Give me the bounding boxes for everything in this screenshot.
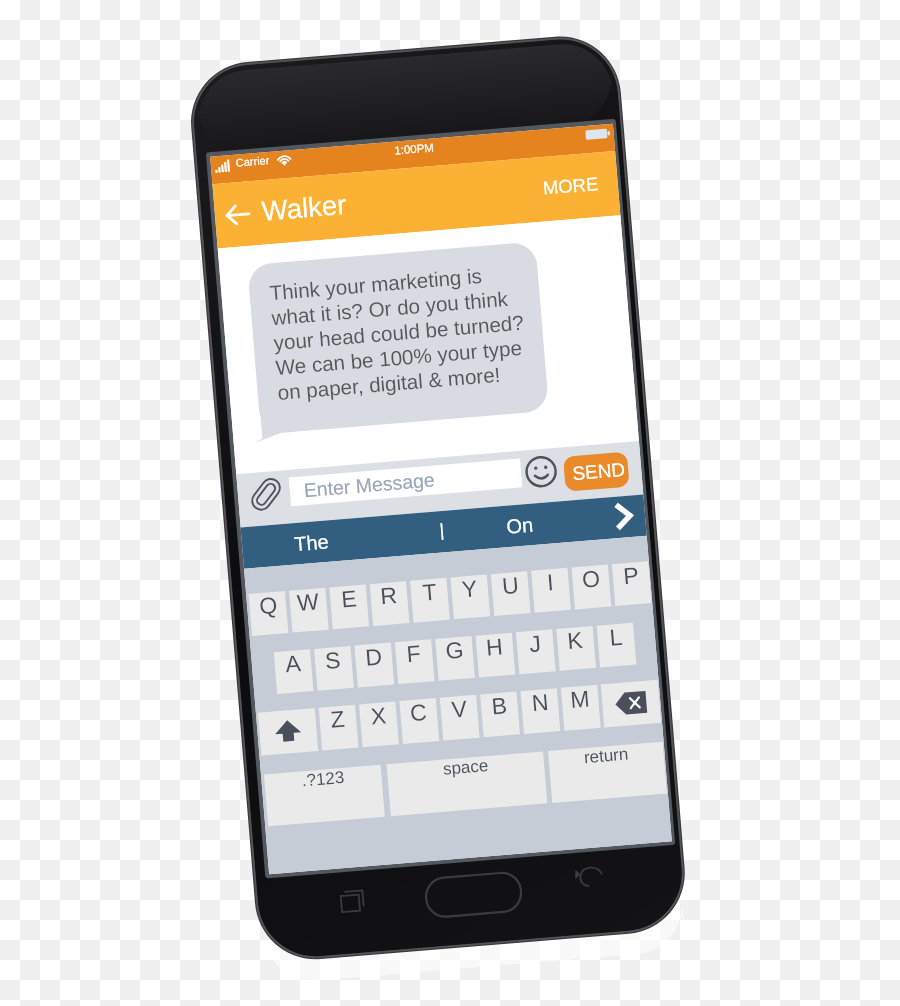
button[interactable]: Z bbox=[319, 705, 358, 751]
staticText: M bbox=[561, 685, 600, 731]
button[interactable]: R bbox=[370, 581, 409, 626]
button[interactable]: C bbox=[399, 698, 439, 744]
staticText: O bbox=[572, 564, 611, 609]
button[interactable]: K bbox=[556, 626, 595, 671]
staticText: R bbox=[370, 581, 409, 626]
staticText: J bbox=[516, 629, 555, 674]
button[interactable]: O bbox=[572, 564, 611, 609]
staticText: U bbox=[491, 571, 531, 616]
staticText: W bbox=[289, 588, 328, 633]
staticText: X bbox=[360, 701, 399, 747]
button[interactable]: L bbox=[597, 623, 636, 667]
staticText: T bbox=[411, 578, 450, 623]
button[interactable]: S bbox=[314, 646, 353, 691]
staticText: F bbox=[395, 639, 434, 684]
button[interactable]: space bbox=[387, 751, 547, 816]
staticText: Z bbox=[319, 705, 358, 751]
staticText: C bbox=[399, 698, 439, 744]
button[interactable]: F bbox=[395, 639, 434, 684]
staticText: H bbox=[475, 633, 515, 677]
button[interactable]: Enter Message bbox=[289, 458, 522, 506]
staticText: .?123 bbox=[264, 765, 385, 826]
button[interactable]: V bbox=[440, 695, 480, 741]
button[interactable]: A bbox=[274, 649, 313, 694]
staticText: N bbox=[521, 688, 560, 734]
button[interactable]: U bbox=[491, 571, 531, 616]
staticText: D bbox=[355, 643, 394, 687]
button[interactable]: I bbox=[531, 568, 570, 613]
button[interactable]: W bbox=[289, 588, 328, 633]
button[interactable]: SEND bbox=[563, 452, 630, 492]
staticText: Walker bbox=[260, 189, 348, 227]
button[interactable]: .?123 bbox=[264, 765, 385, 826]
staticText: I bbox=[531, 568, 570, 613]
button[interactable]: On bbox=[475, 501, 568, 549]
button[interactable]: P bbox=[612, 561, 651, 606]
button[interactable]: N bbox=[521, 688, 560, 734]
staticText: Y bbox=[450, 574, 490, 619]
button[interactable]: J bbox=[516, 629, 555, 674]
staticText: B bbox=[480, 691, 519, 737]
staticText: G bbox=[435, 636, 475, 681]
button[interactable]: Q bbox=[249, 591, 288, 636]
staticText: 1:00PM bbox=[394, 141, 435, 158]
staticText: Carrier bbox=[235, 154, 270, 169]
staticText: E bbox=[330, 584, 369, 629]
staticText: Q bbox=[249, 591, 288, 636]
staticText: A bbox=[274, 649, 313, 694]
staticText: On bbox=[506, 514, 534, 538]
staticText: S bbox=[314, 646, 353, 691]
button[interactable]: D bbox=[355, 643, 394, 687]
staticText: return bbox=[548, 742, 667, 803]
button[interactable]: H bbox=[475, 633, 515, 677]
staticText: The bbox=[293, 530, 330, 555]
button[interactable]: B bbox=[480, 691, 519, 737]
staticText: | bbox=[439, 520, 445, 540]
staticText: Think your marketing is what it is? Or d… bbox=[269, 261, 529, 405]
button[interactable]: X bbox=[360, 701, 399, 747]
staticText: P bbox=[612, 561, 651, 606]
staticText: L bbox=[597, 623, 636, 667]
button[interactable]: Y bbox=[450, 574, 490, 619]
button[interactable]: Back bbox=[220, 197, 256, 234]
button[interactable]: T bbox=[411, 578, 450, 623]
button[interactable]: The bbox=[261, 516, 384, 567]
button[interactable]: Shift bbox=[258, 708, 318, 756]
staticText: MORE bbox=[542, 173, 599, 199]
staticText: space bbox=[387, 751, 547, 816]
button[interactable]: Walker bbox=[258, 182, 381, 234]
button[interactable]: M bbox=[561, 685, 600, 731]
button[interactable]: return bbox=[548, 742, 667, 803]
button[interactable]: Backspace bbox=[601, 680, 661, 727]
button[interactable]: E bbox=[330, 584, 369, 629]
button[interactable]: G bbox=[435, 636, 475, 681]
staticText: V bbox=[440, 695, 480, 741]
button[interactable]: MORE bbox=[537, 169, 605, 204]
staticText: K bbox=[556, 626, 595, 671]
staticText: SEND bbox=[571, 459, 626, 484]
staticText: Enter Message bbox=[303, 468, 436, 501]
